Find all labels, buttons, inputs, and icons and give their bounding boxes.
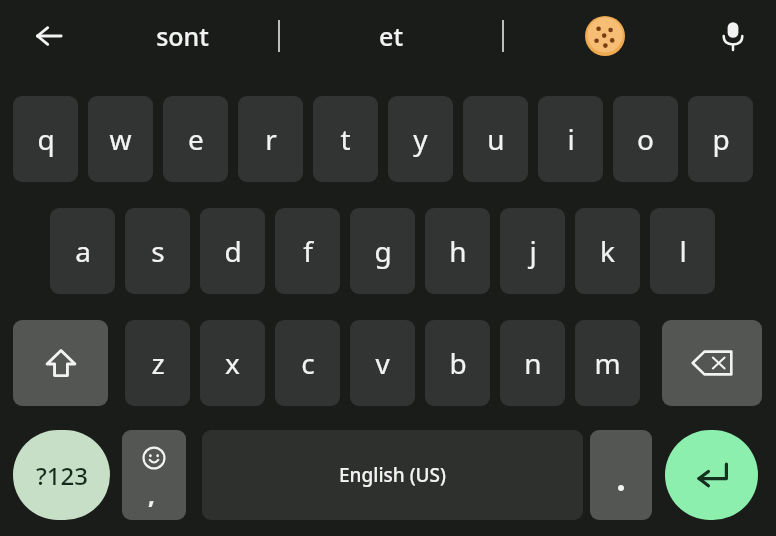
staticText: d <box>224 232 242 270</box>
staticText: ?123 <box>36 459 88 492</box>
staticText: m <box>594 344 621 382</box>
staticText: s <box>151 232 165 270</box>
staticText: o <box>637 120 654 158</box>
staticText: x <box>225 344 240 382</box>
button[interactable]: Enter <box>665 430 758 520</box>
button[interactable]: m <box>575 320 640 406</box>
button[interactable]: Voice input <box>708 11 758 61</box>
button[interactable]: y <box>388 96 453 182</box>
button[interactable]: Backspace <box>662 320 762 406</box>
staticText: sont <box>156 19 209 53</box>
staticText: v <box>375 344 390 382</box>
button[interactable]: l <box>650 208 715 294</box>
staticText: English (US) <box>339 462 446 488</box>
staticText: q <box>37 120 55 158</box>
button[interactable]: r <box>238 96 303 182</box>
button[interactable]: p <box>688 96 753 182</box>
button[interactable]: Shift <box>13 320 108 406</box>
button[interactable]: x <box>200 320 265 406</box>
staticText: h <box>449 232 467 270</box>
button[interactable]: sont <box>110 8 255 64</box>
button[interactable]: j <box>500 208 565 294</box>
button[interactable]: n <box>500 320 565 406</box>
staticText: f <box>303 232 313 270</box>
button[interactable]: q <box>13 96 78 182</box>
button[interactable]: d <box>200 208 265 294</box>
staticText: c <box>301 344 315 382</box>
button[interactable]: v <box>350 320 415 406</box>
button[interactable]: f <box>275 208 340 294</box>
button[interactable]: k <box>575 208 640 294</box>
button[interactable]: u <box>463 96 528 182</box>
staticText: g <box>374 232 392 270</box>
button[interactable]: et <box>318 8 463 64</box>
button[interactable]: e <box>163 96 228 182</box>
button[interactable]: t <box>313 96 378 182</box>
staticText: k <box>600 232 615 270</box>
button[interactable]: h <box>425 208 490 294</box>
staticText: w <box>109 120 132 158</box>
button[interactable]: Period <box>590 430 652 520</box>
button[interactable]: g <box>350 208 415 294</box>
button[interactable]: ?123 <box>13 430 110 520</box>
button[interactable]: w <box>88 96 153 182</box>
button[interactable]: English (US) <box>202 430 583 520</box>
button[interactable]: Back <box>24 13 74 59</box>
button[interactable]: c <box>275 320 340 406</box>
staticText: et <box>379 19 403 53</box>
staticText: i <box>567 120 575 158</box>
staticText: b <box>449 344 467 382</box>
staticText: z <box>151 344 165 382</box>
staticText: , <box>148 478 155 511</box>
staticText: j <box>529 232 537 270</box>
staticText: a <box>75 232 91 270</box>
button[interactable]: Emoji and comma <box>122 430 186 520</box>
button[interactable]: o <box>613 96 678 182</box>
button[interactable]: b <box>425 320 490 406</box>
button[interactable]: z <box>125 320 190 406</box>
staticText: y <box>413 120 428 158</box>
button[interactable]: i <box>538 96 603 182</box>
staticText: p <box>712 120 730 158</box>
button[interactable]: s <box>125 208 190 294</box>
staticText: t <box>340 120 351 158</box>
staticText: u <box>487 120 505 158</box>
staticText: n <box>524 344 542 382</box>
button[interactable]: a <box>50 208 115 294</box>
staticText: l <box>679 232 687 270</box>
staticText: r <box>265 120 277 158</box>
button[interactable]: Cookie emoji <box>578 11 632 61</box>
staticText: e <box>188 120 204 158</box>
